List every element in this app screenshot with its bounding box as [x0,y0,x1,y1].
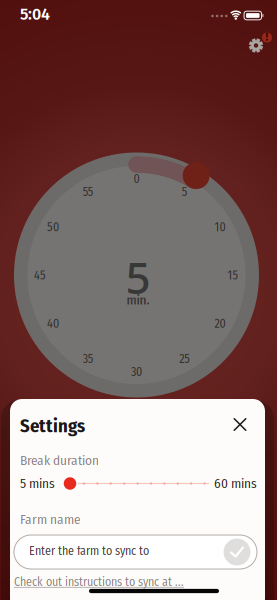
staticText: Farm name [20,512,81,527]
button[interactable]: ! [241,29,277,62]
staticText: 5 [125,247,150,307]
button[interactable] [228,413,252,436]
staticText: Break duration [20,453,99,468]
staticText: Enter the farm to sync to [29,544,149,558]
staticText: 20 [215,317,226,331]
button[interactable] [64,477,76,490]
staticText: ! [265,31,268,44]
staticText: Check out instructions to sync at ... [14,575,184,589]
button[interactable] [183,162,210,189]
staticText: 40 [47,317,59,331]
staticText: 10 [215,220,226,234]
staticText: 35 [83,352,94,366]
staticText: 5 mins [20,476,55,491]
staticText: min. [126,292,149,308]
staticText: 60 mins [214,476,257,491]
staticText: Settings [20,415,85,437]
staticText: 55 [83,185,94,199]
button[interactable]: Check out instructions to sync at ... [14,575,261,589]
button[interactable]: Enter the farm to sync to [14,535,257,569]
staticText: 30 [131,365,142,379]
staticText: 0 [133,172,139,186]
staticText: 5 [182,185,188,199]
staticText: 25 [179,352,190,366]
staticText: 45 [34,268,46,282]
staticText: 50 [47,220,59,234]
staticText: 5:04 [20,5,50,24]
staticText: 15 [227,268,238,282]
